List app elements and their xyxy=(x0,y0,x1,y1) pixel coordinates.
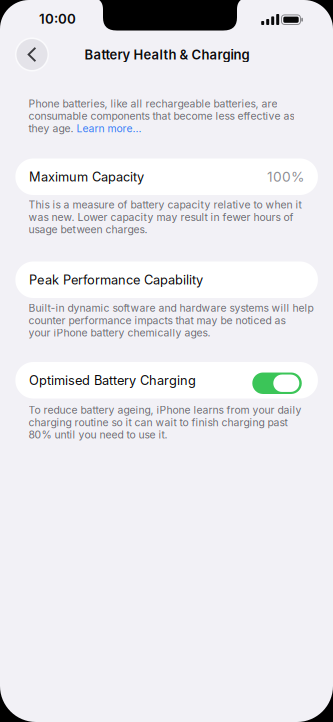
staticText: consumable components that become less e… xyxy=(28,110,294,122)
staticText: 10:00 xyxy=(39,11,76,27)
staticText: usage between charges. xyxy=(29,223,148,236)
staticText: Battery Health & Charging xyxy=(84,47,249,63)
staticText: Learn more... xyxy=(76,122,141,134)
staticText: they age. xyxy=(28,122,76,134)
staticText: Peak Performance Capability xyxy=(29,272,203,287)
staticText: This is a measure of battery capacity re… xyxy=(29,198,302,211)
staticText: 100% xyxy=(267,168,304,185)
staticText: Maximum Capacity xyxy=(29,169,144,184)
staticText: Built-in dynamic software and hardware s… xyxy=(29,302,314,314)
staticText: To reduce battery ageing, iPhone learns … xyxy=(29,404,302,416)
button[interactable]: Learn more... xyxy=(76,122,141,134)
staticText: 80% until you need to use it. xyxy=(29,429,168,441)
staticText: Optimised Battery Charging xyxy=(29,372,196,388)
button[interactable]: Back xyxy=(15,37,49,71)
staticText: charging routine so it can wait to finis… xyxy=(29,416,288,428)
staticText: was new. Lower capacity may result in fe… xyxy=(29,211,294,223)
staticText: counter performance impacts that may be … xyxy=(29,314,286,326)
staticText: your iPhone battery chemically ages. xyxy=(29,327,211,339)
staticText: Phone batteries, like all rechargeable b… xyxy=(28,97,277,110)
button[interactable]: Optimised Battery Charging, on xyxy=(252,372,302,394)
